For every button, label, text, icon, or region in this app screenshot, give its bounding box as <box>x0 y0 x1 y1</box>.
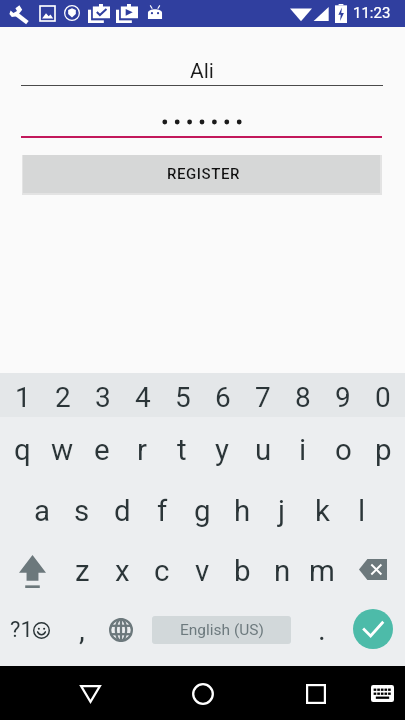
staticText: d <box>114 494 131 529</box>
button[interactable]: s <box>62 482 102 540</box>
button[interactable]: y <box>202 421 242 479</box>
button[interactable]: v <box>182 542 222 600</box>
button[interactable]: 0 <box>362 375 403 419</box>
button[interactable]: n <box>262 542 302 600</box>
button[interactable]: q <box>2 421 42 479</box>
button[interactable]: . <box>301 601 343 659</box>
button[interactable]: , <box>61 601 103 659</box>
button[interactable]: i <box>283 421 323 479</box>
button[interactable]: r <box>122 421 162 479</box>
staticText: q <box>14 433 31 468</box>
staticText: u <box>255 433 272 468</box>
staticText: 7 <box>255 381 271 414</box>
staticText: 0 <box>375 381 391 414</box>
button[interactable]: Backspace <box>343 540 403 598</box>
staticText: REGISTER <box>167 165 240 183</box>
button[interactable]: Enter <box>350 602 396 656</box>
staticText: b <box>234 554 251 589</box>
button[interactable]: u <box>243 421 283 479</box>
staticText: x <box>115 554 130 589</box>
staticText: z <box>75 554 90 589</box>
staticText: y <box>215 433 229 468</box>
staticText: 5 <box>175 381 191 414</box>
staticText: w <box>51 433 74 468</box>
staticText: 4 <box>135 381 151 414</box>
staticText: s <box>74 494 90 529</box>
button[interactable]: m <box>302 542 342 600</box>
button[interactable]: a <box>22 482 62 540</box>
staticText: ?1 <box>10 617 33 643</box>
button[interactable] <box>21 107 383 137</box>
staticText: j <box>278 494 286 529</box>
button[interactable]: z <box>62 542 102 600</box>
button[interactable]: p <box>363 421 403 479</box>
button[interactable]: g <box>182 482 222 540</box>
staticText: 2 <box>55 381 71 414</box>
button[interactable]: j <box>262 482 302 540</box>
button[interactable]: 9 <box>322 375 363 419</box>
button[interactable]: 7 <box>242 375 283 419</box>
button[interactable]: h <box>222 482 262 540</box>
button[interactable]: x <box>102 542 142 600</box>
button[interactable]: 6 <box>202 375 243 419</box>
staticText: 6 <box>215 381 231 414</box>
button[interactable]: t <box>162 421 202 479</box>
staticText: c <box>154 554 170 589</box>
button[interactable]: w <box>42 421 82 479</box>
staticText: k <box>315 494 330 529</box>
staticText: English (US) <box>180 621 264 639</box>
staticText: , <box>79 613 85 648</box>
button[interactable]: Recents <box>292 670 339 717</box>
staticText: 3 <box>95 381 111 414</box>
button[interactable]: Symbols and emoji <box>1 601 59 659</box>
button[interactable]: Back <box>67 670 114 717</box>
button[interactable]: f <box>142 482 182 540</box>
button[interactable]: Home <box>179 670 226 717</box>
button[interactable]: 4 <box>122 375 163 419</box>
staticText: a <box>34 494 51 529</box>
button[interactable]: 2 <box>42 375 83 419</box>
button[interactable]: k <box>302 482 342 540</box>
button[interactable]: REGISTER <box>23 155 380 193</box>
staticText: 8 <box>295 381 311 414</box>
button[interactable]: o <box>323 421 363 479</box>
staticText: 9 <box>335 381 351 414</box>
button[interactable]: 5 <box>162 375 203 419</box>
staticText: o <box>335 433 352 468</box>
staticText: f <box>157 494 168 529</box>
button[interactable]: 1 <box>2 375 43 419</box>
button[interactable]: Shift <box>2 542 62 600</box>
button[interactable]: English (US) <box>152 616 291 644</box>
button[interactable]: Change language <box>100 601 142 659</box>
staticText: m <box>309 554 335 589</box>
staticText: 1 <box>15 381 31 414</box>
staticText: Ali <box>190 59 214 84</box>
button[interactable]: c <box>142 542 182 600</box>
button[interactable]: 3 <box>82 375 123 419</box>
staticText: h <box>234 494 251 529</box>
button[interactable]: e <box>82 421 122 479</box>
staticText: i <box>299 433 307 468</box>
button[interactable]: b <box>222 542 262 600</box>
staticText: t <box>177 433 187 468</box>
staticText: r <box>137 433 147 468</box>
staticText: 11:23 <box>353 4 391 22</box>
staticText: e <box>94 433 110 468</box>
staticText: l <box>358 494 366 529</box>
staticText: g <box>194 494 211 529</box>
button[interactable]: Switch keyboard <box>361 672 404 714</box>
staticText: . <box>318 613 326 648</box>
staticText: p <box>375 433 392 468</box>
button[interactable]: d <box>102 482 142 540</box>
button[interactable]: l <box>342 482 382 540</box>
staticText: v <box>195 554 210 589</box>
button[interactable]: Ali <box>21 55 383 87</box>
staticText: n <box>274 554 291 589</box>
button[interactable]: 8 <box>282 375 323 419</box>
